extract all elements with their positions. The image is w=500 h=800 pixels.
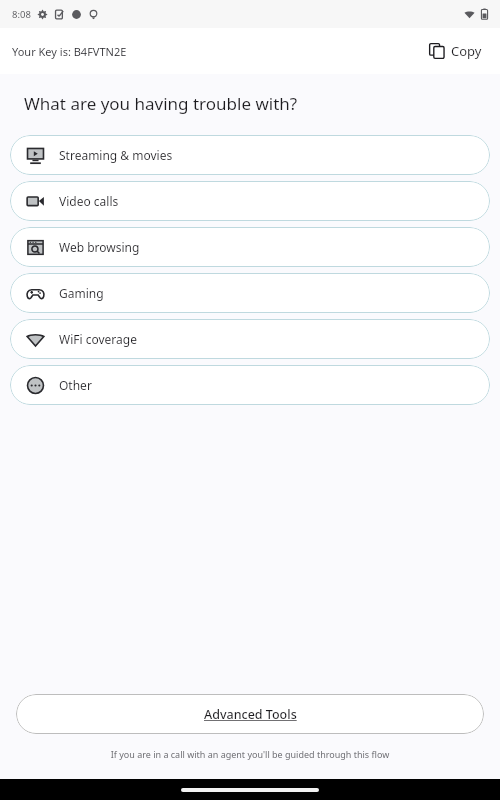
staticText: 8:08 [12, 8, 31, 21]
button[interactable]: WiFi coverage [10, 319, 490, 359]
staticText: WiFi coverage [59, 331, 137, 347]
button[interactable]: Video calls [10, 181, 490, 221]
staticText: Gaming [59, 285, 104, 301]
button[interactable]: Advanced Tools [16, 694, 484, 734]
staticText: If you are in a call with an agent you'l… [20, 748, 480, 760]
button[interactable]: Streaming & movies [10, 135, 490, 175]
staticText: Streaming & movies [59, 147, 173, 163]
button[interactable]: Web browsing [10, 227, 490, 267]
staticText: Web browsing [59, 239, 140, 255]
staticText: Video calls [59, 193, 119, 209]
staticText: Your Key is: B4FVTN2E [12, 44, 127, 59]
staticText: Other [59, 377, 92, 393]
staticText: What are you having trouble with? [24, 92, 298, 115]
staticText: Copy [451, 42, 482, 60]
button[interactable]: Copy [425, 38, 486, 64]
staticText: Advanced Tools [204, 706, 297, 723]
button[interactable]: Other [10, 365, 490, 405]
button[interactable]: Gaming [10, 273, 490, 313]
